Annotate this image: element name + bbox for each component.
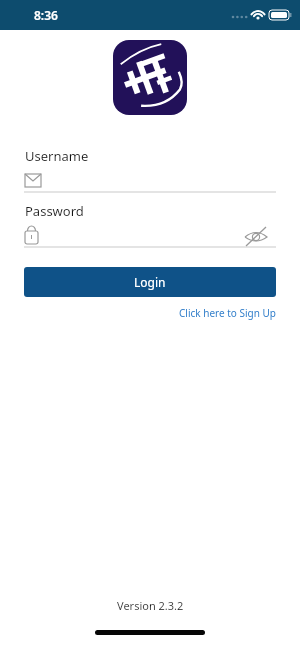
button[interactable]: [24, 170, 276, 193]
button[interactable]: [24, 225, 242, 248]
staticText: Version 2.3.2: [117, 598, 184, 613]
staticText: Username: [25, 147, 89, 165]
staticText: 8:36: [34, 7, 58, 23]
staticText: Password: [25, 202, 84, 220]
button[interactable]: Login: [24, 267, 276, 297]
button[interactable]: Click here to Sign Up: [179, 306, 276, 320]
button[interactable]: [242, 225, 276, 248]
staticText: Login: [134, 274, 166, 290]
